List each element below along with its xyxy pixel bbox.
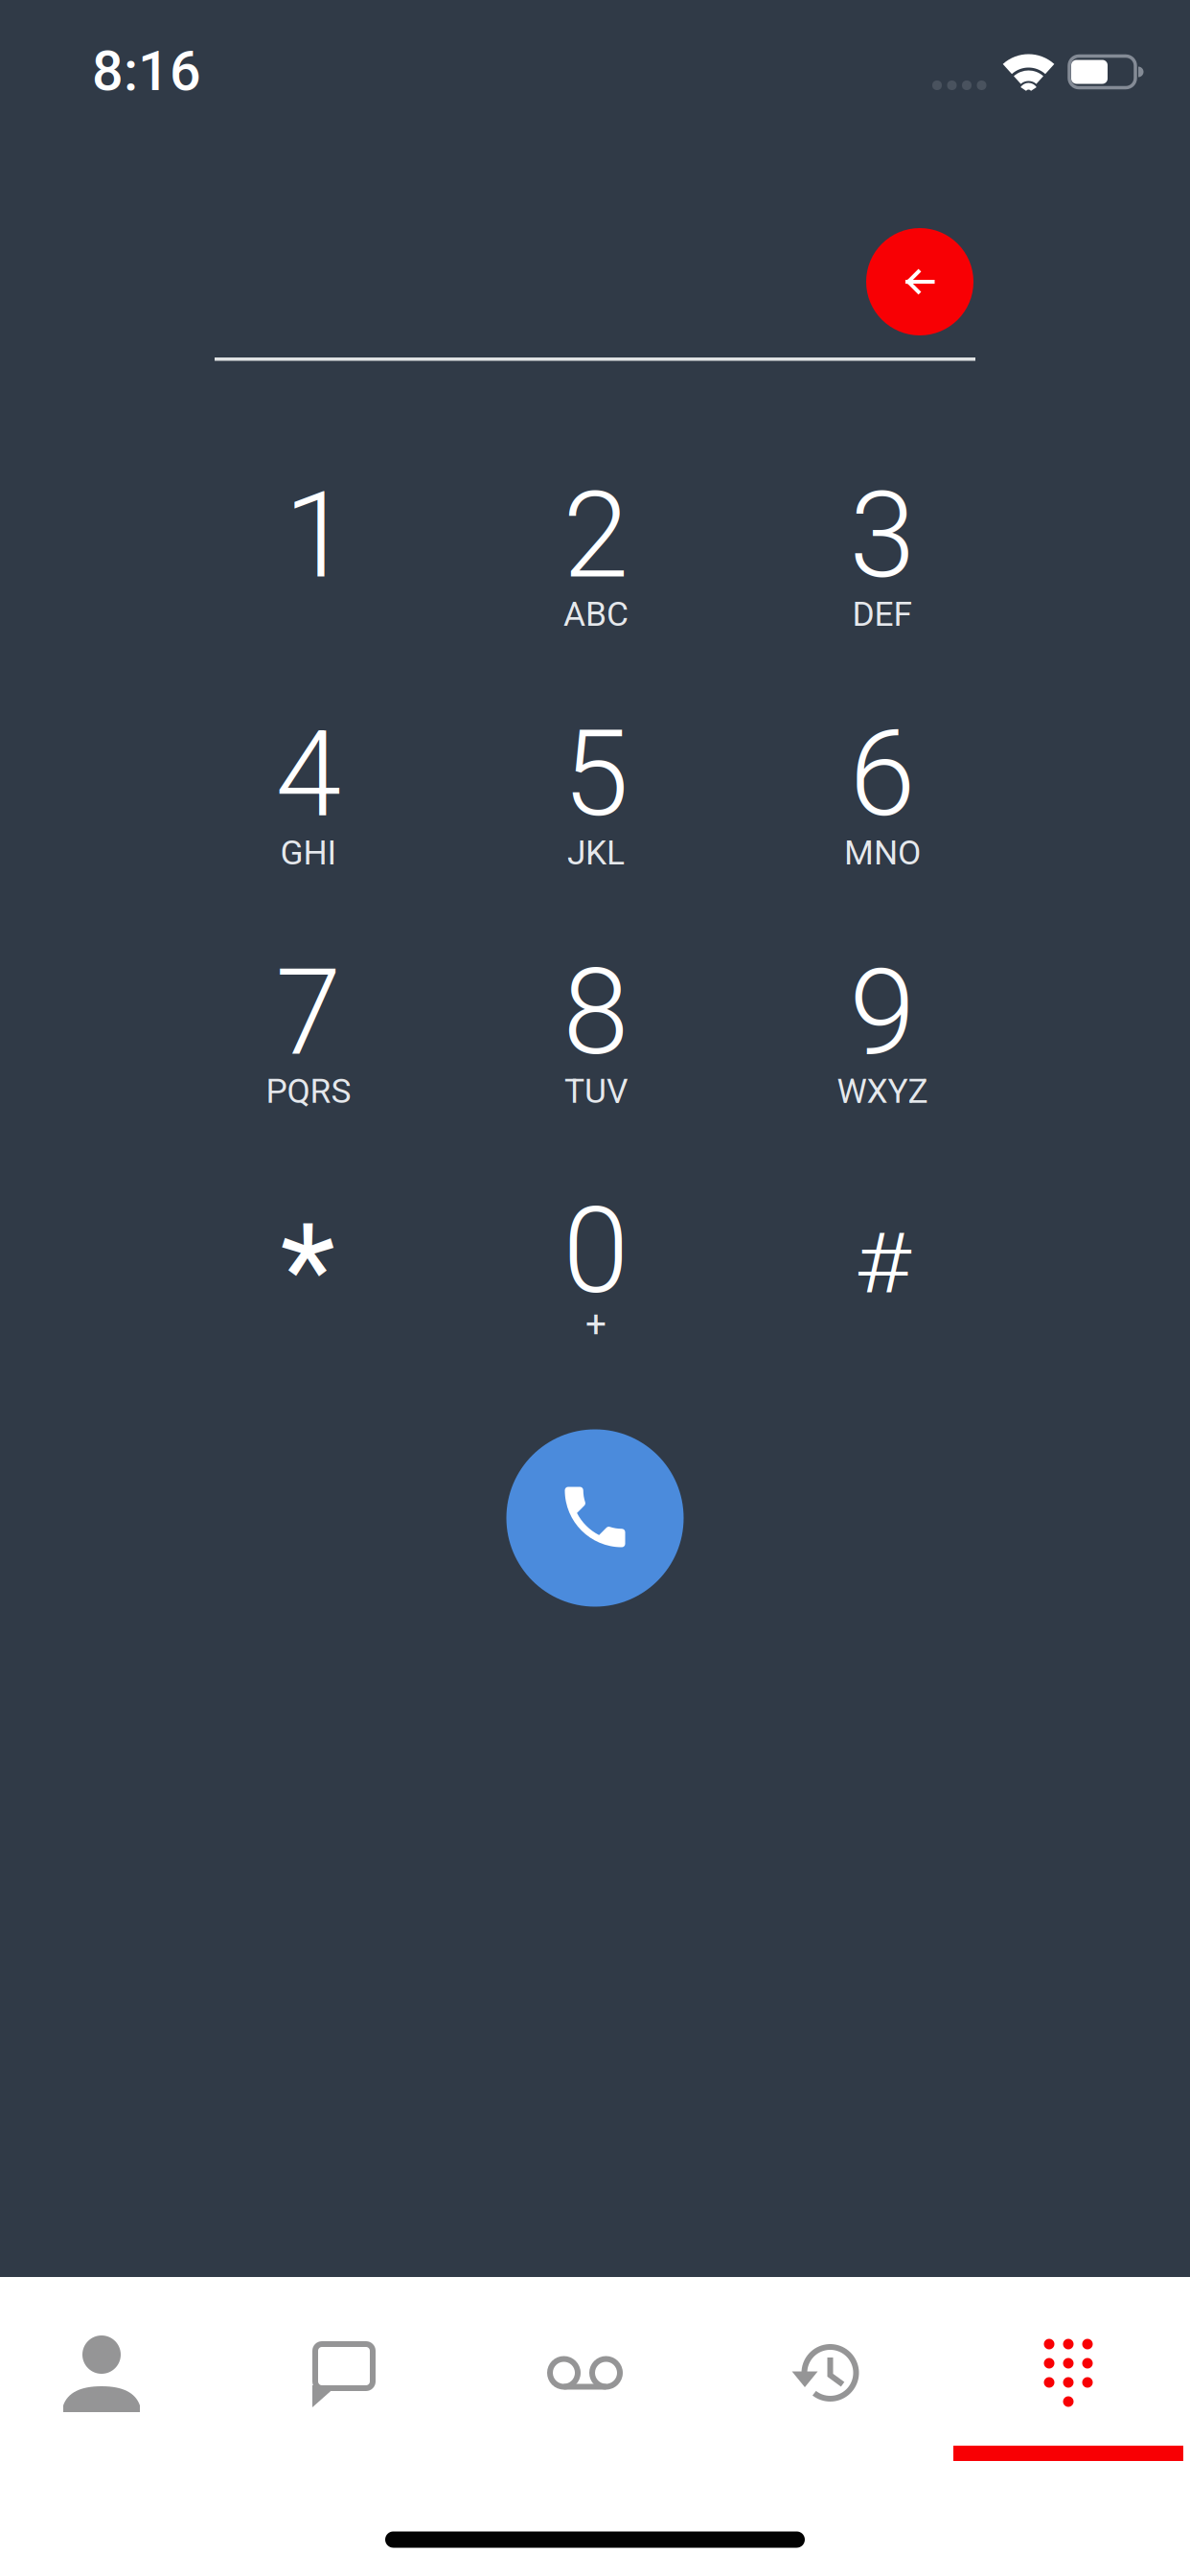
button[interactable]: 7 [184,938,433,1161]
staticText: 3 [849,466,915,605]
staticText: 4 [275,704,342,844]
staticText: 0 [563,1181,629,1321]
staticText: GHI [280,833,337,873]
button[interactable]: Recents [763,2306,897,2440]
staticText: WXYZ [837,1071,928,1111]
button[interactable]: Delete [866,228,973,335]
staticText: + [585,1303,606,1346]
staticText: 6 [849,704,915,844]
button[interactable]: 2 [471,461,721,684]
staticText: JKL [567,833,625,873]
button[interactable]: 5 [471,700,721,922]
staticText: * [280,1196,335,1346]
button[interactable]: 6 [758,700,1007,922]
staticText: # [858,1214,907,1312]
button[interactable]: 4 [184,700,433,922]
button[interactable]: 1 [184,461,433,684]
button[interactable]: Messages [277,2306,411,2440]
button[interactable]: 8 [471,938,721,1161]
staticText: PQRS [266,1071,351,1111]
staticText: MNO [844,833,921,873]
button[interactable]: Contacts [34,2306,169,2440]
button[interactable]: # [758,1177,1007,1399]
button[interactable]: 0 [471,1177,721,1399]
staticText: 9 [849,943,915,1082]
staticText: ABC [563,594,629,634]
button[interactable]: 3 [758,461,1007,684]
button[interactable]: Dialpad [1001,2306,1135,2440]
staticText: 2 [563,466,629,605]
staticText: 7 [275,943,342,1082]
staticText: 5 [563,704,629,844]
staticText: 8 [563,943,629,1082]
button[interactable]: 9 [758,938,1007,1161]
staticText: 1 [284,466,350,605]
button[interactable]: Voicemail [518,2306,652,2440]
button[interactable]: * [183,1177,432,1399]
button[interactable]: Call [506,1429,684,1607]
staticText: 8:16 [92,39,201,104]
staticText: TUV [564,1071,628,1111]
staticText: DEF [852,594,913,634]
